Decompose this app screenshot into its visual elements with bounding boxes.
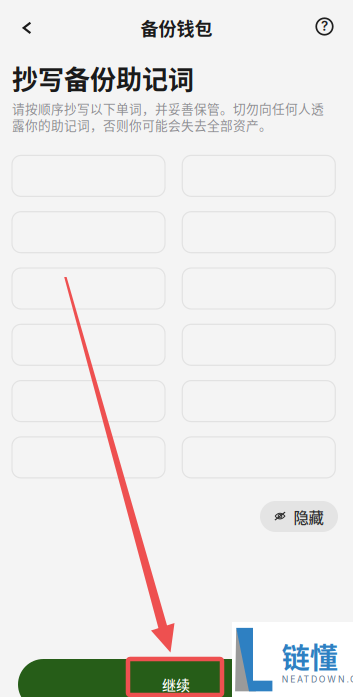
staticText: 抄写备份助记词 bbox=[12, 59, 194, 97]
button[interactable]: Help bbox=[302, 4, 346, 48]
staticText: ? bbox=[321, 18, 328, 34]
staticText: 隐藏 bbox=[293, 505, 323, 528]
button[interactable]: 隐藏 bbox=[260, 501, 338, 532]
staticText: 请按顺序抄写以下单词，并妥善保管。切勿向任何人透露你的助记词，否则你可能会失去全… bbox=[12, 100, 324, 133]
button[interactable]: Back bbox=[5, 6, 49, 50]
staticText: 备份钱包 bbox=[140, 15, 212, 41]
button[interactable]: 继续 bbox=[18, 659, 334, 697]
staticText: NEATDOWN.COM bbox=[282, 674, 353, 684]
staticText: 继续 bbox=[162, 674, 190, 695]
staticText: 链懂 bbox=[282, 636, 338, 676]
